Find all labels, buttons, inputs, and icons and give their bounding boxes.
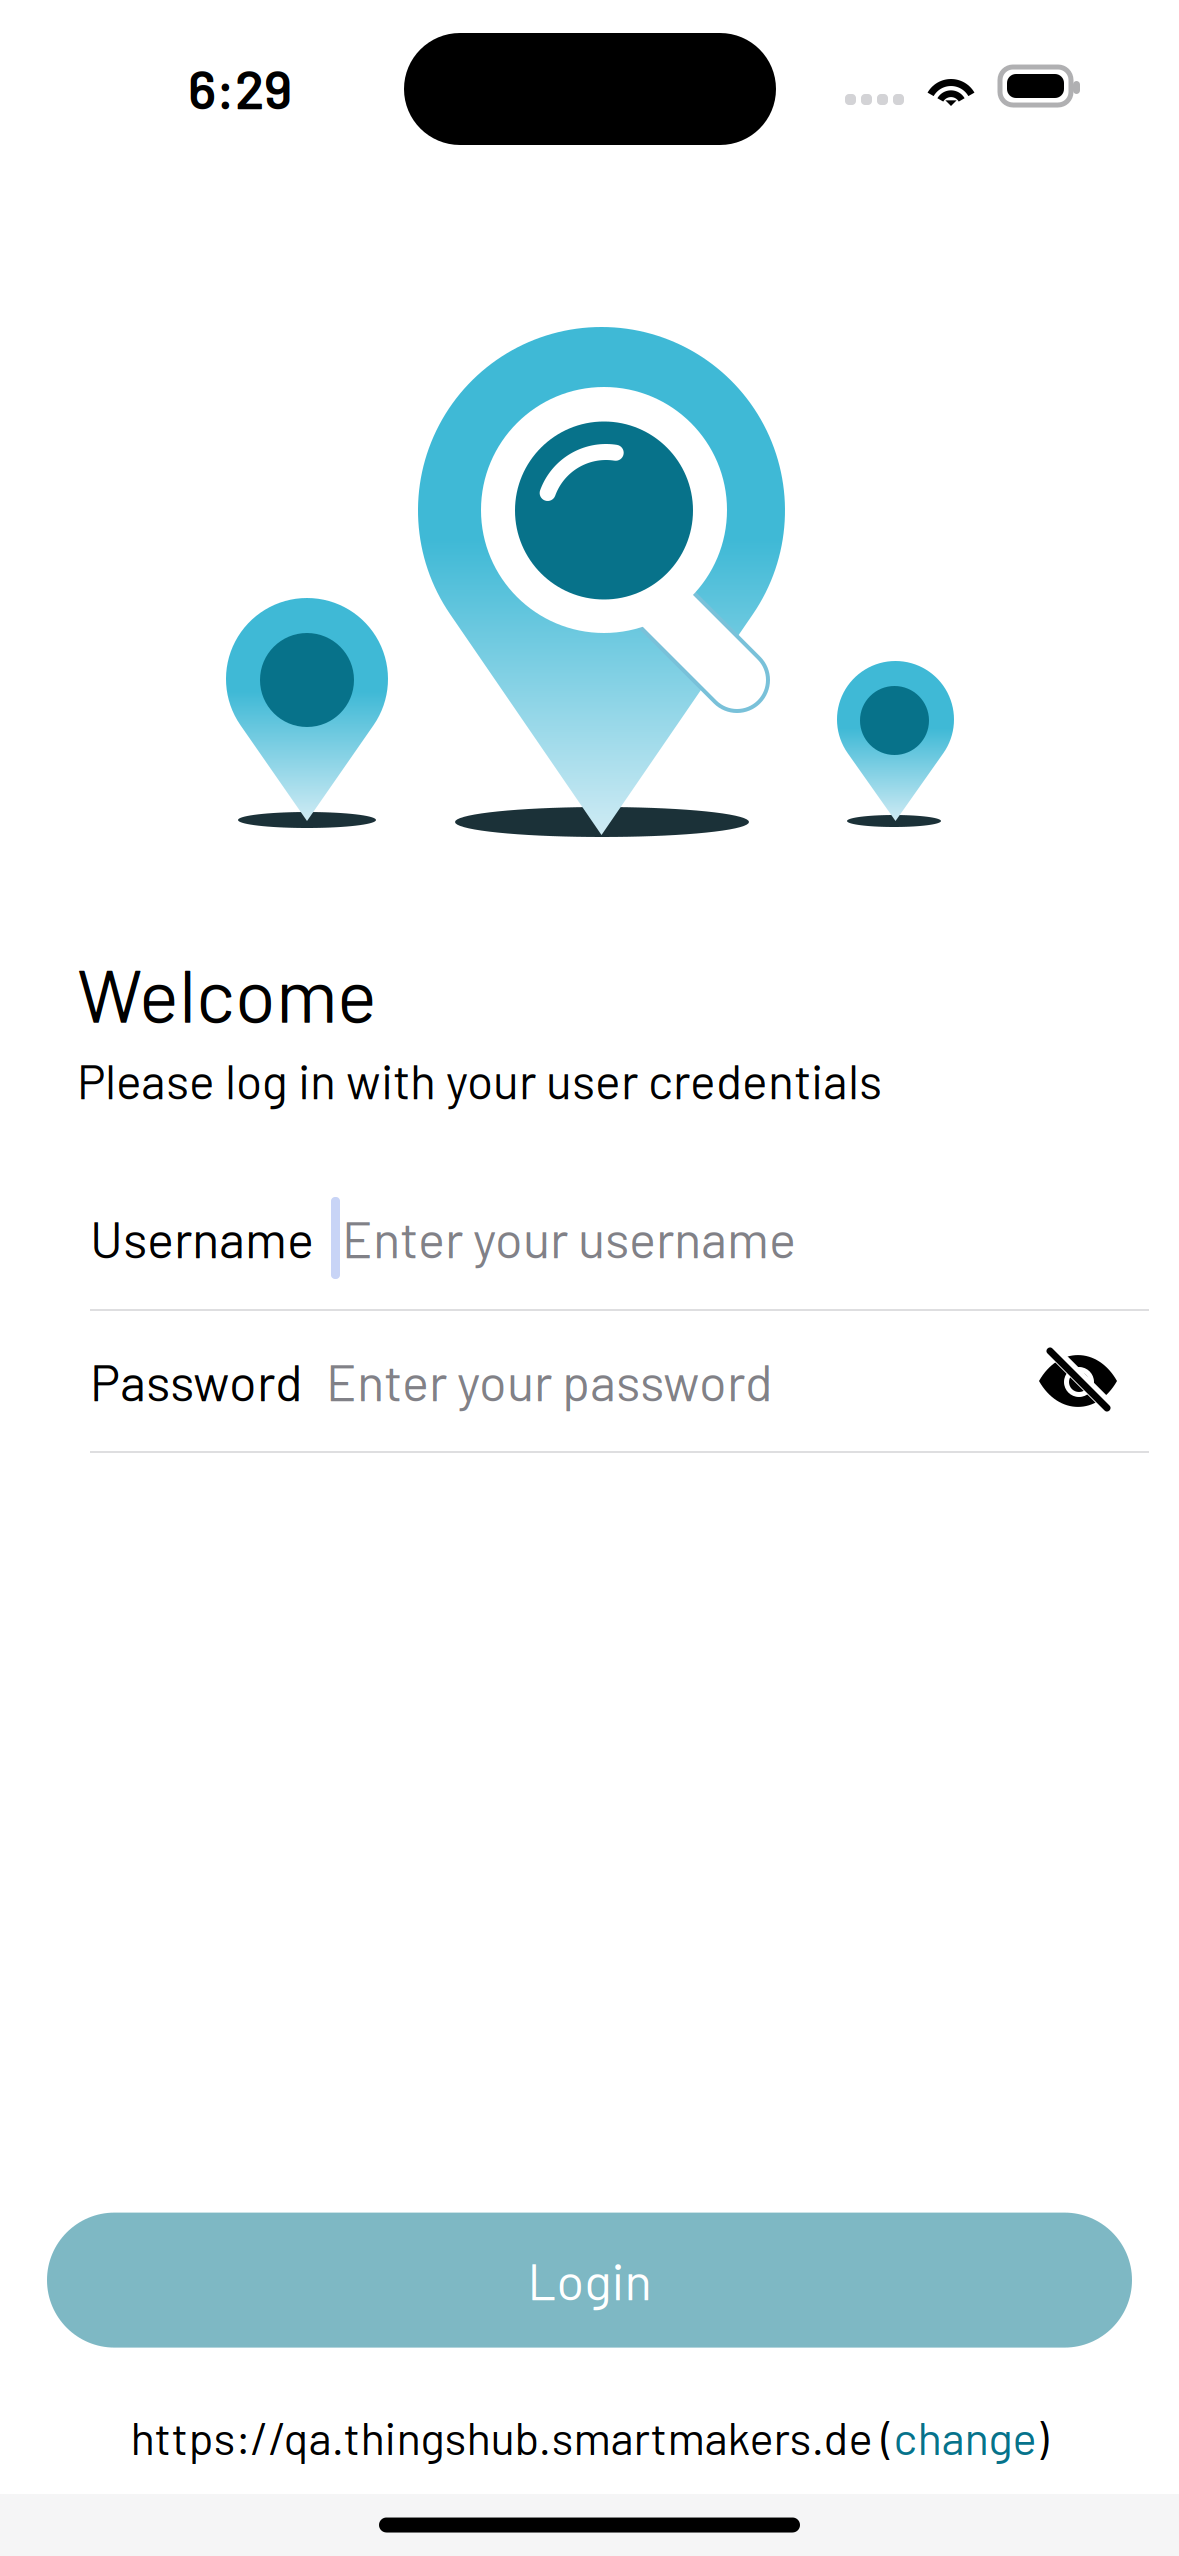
staticText: https://qa.thingshub.smartmakers.de ( — [130, 2410, 893, 2464]
staticText: ) — [1036, 2410, 1048, 2464]
staticText: Username — [90, 1208, 314, 1268]
staticText: Enter your password — [326, 1351, 773, 1411]
staticText: Please log in with your user credentials — [77, 1051, 882, 1109]
staticText: change — [893, 2410, 1036, 2464]
staticText: Enter your username — [342, 1208, 796, 1268]
button[interactable]: Login — [47, 2213, 1132, 2348]
staticText: 6:29 — [188, 56, 292, 120]
button[interactable]: Show password — [1030, 1333, 1126, 1429]
button[interactable]: https://qa.thingshub.smartmakers.de ( — [130, 2410, 1048, 2464]
staticText: Login — [527, 2250, 651, 2310]
staticText: Welcome — [77, 948, 377, 1038]
staticText: Password — [90, 1351, 303, 1411]
